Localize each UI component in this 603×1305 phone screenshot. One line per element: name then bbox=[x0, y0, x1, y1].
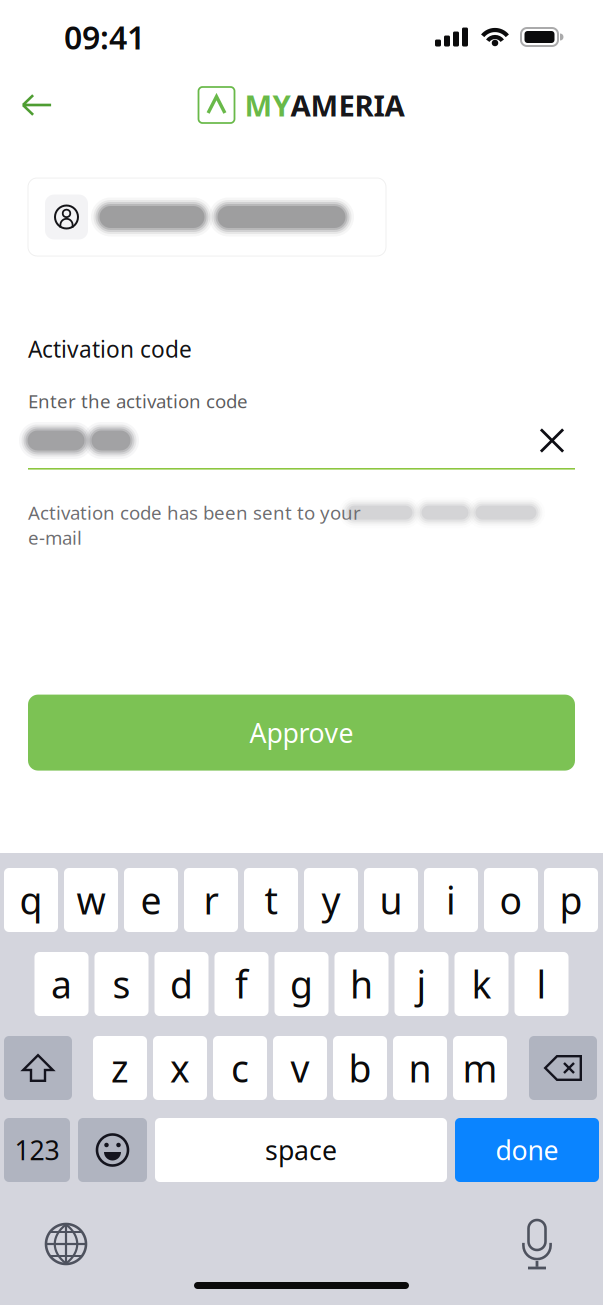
staticText: e bbox=[140, 875, 161, 925]
button[interactable]: u bbox=[364, 868, 418, 932]
button[interactable]: a bbox=[34, 952, 88, 1016]
button[interactable]: r bbox=[184, 868, 238, 932]
staticText: s bbox=[112, 959, 130, 1009]
staticText: c bbox=[231, 1043, 249, 1093]
button[interactable]: 123 bbox=[4, 1118, 70, 1182]
button[interactable]: space bbox=[155, 1118, 447, 1182]
staticText: t bbox=[264, 875, 277, 925]
button[interactable]: b bbox=[333, 1036, 387, 1100]
staticText: MY bbox=[244, 85, 290, 124]
staticText: x bbox=[170, 1043, 190, 1093]
button[interactable]: j bbox=[394, 952, 448, 1016]
button[interactable]: t bbox=[244, 868, 298, 932]
button[interactable]: n bbox=[393, 1036, 447, 1100]
button[interactable]: Clear text bbox=[529, 417, 575, 463]
button[interactable]: m bbox=[453, 1036, 507, 1100]
button[interactable]: Approve bbox=[28, 695, 575, 771]
button[interactable]: g bbox=[274, 952, 328, 1016]
button[interactable]: x bbox=[153, 1036, 207, 1100]
button[interactable]: d bbox=[154, 952, 208, 1016]
button[interactable]: o bbox=[484, 868, 538, 932]
staticText: AMERIA bbox=[290, 85, 404, 124]
button[interactable]: Back bbox=[0, 78, 74, 132]
staticText: p bbox=[559, 875, 582, 925]
staticText: a bbox=[51, 959, 72, 1009]
staticText: 123 bbox=[14, 1132, 59, 1168]
staticText: Approve bbox=[249, 715, 353, 750]
staticText: r bbox=[203, 875, 218, 925]
button[interactable]: c bbox=[213, 1036, 267, 1100]
staticText: b bbox=[348, 1043, 371, 1093]
button[interactable]: h bbox=[334, 952, 388, 1016]
button[interactable]: w bbox=[64, 868, 118, 932]
staticText: w bbox=[76, 875, 105, 925]
staticText: e-mail bbox=[28, 525, 82, 550]
staticText: v bbox=[290, 1043, 309, 1093]
staticText: m bbox=[462, 1043, 497, 1093]
staticText: h bbox=[350, 959, 373, 1009]
staticText: i bbox=[446, 875, 456, 925]
staticText: k bbox=[471, 959, 491, 1009]
button[interactable]: Next keyboard bbox=[38, 1216, 94, 1272]
button[interactable]: y bbox=[304, 868, 358, 932]
button[interactable]: f bbox=[214, 952, 268, 1016]
staticText: q bbox=[19, 875, 42, 925]
staticText: n bbox=[408, 1043, 431, 1093]
button[interactable]: q bbox=[4, 868, 58, 932]
button[interactable]: p bbox=[544, 868, 598, 932]
staticText: l bbox=[536, 959, 546, 1009]
button[interactable]: z bbox=[93, 1036, 147, 1100]
button[interactable]: v bbox=[273, 1036, 327, 1100]
staticText: space bbox=[265, 1132, 337, 1168]
button[interactable]: k bbox=[454, 952, 508, 1016]
button[interactable] bbox=[28, 178, 386, 256]
staticText: y bbox=[321, 875, 340, 925]
staticText: z bbox=[111, 1043, 129, 1093]
button[interactable]: s bbox=[94, 952, 148, 1016]
staticText: g bbox=[290, 959, 313, 1009]
staticText: Enter the activation code bbox=[28, 389, 248, 413]
button[interactable]: Delete bbox=[529, 1036, 597, 1100]
button[interactable]: done bbox=[455, 1118, 599, 1182]
staticText: u bbox=[379, 875, 402, 925]
staticText: o bbox=[499, 875, 522, 925]
button[interactable]: Shift bbox=[4, 1036, 72, 1100]
staticText: f bbox=[235, 959, 248, 1009]
staticText: Activation code bbox=[28, 334, 192, 364]
button[interactable]: e bbox=[124, 868, 178, 932]
staticText: j bbox=[416, 959, 426, 1009]
staticText: Activation code has been sent to your bbox=[28, 500, 361, 525]
staticText: 09:41 bbox=[64, 16, 145, 58]
button[interactable]: i bbox=[424, 868, 478, 932]
button[interactable]: l bbox=[514, 952, 568, 1016]
staticText: d bbox=[170, 959, 193, 1009]
button[interactable]: Emoji bbox=[78, 1118, 147, 1182]
staticText: done bbox=[495, 1132, 558, 1168]
button[interactable]: Dictate bbox=[509, 1216, 565, 1272]
